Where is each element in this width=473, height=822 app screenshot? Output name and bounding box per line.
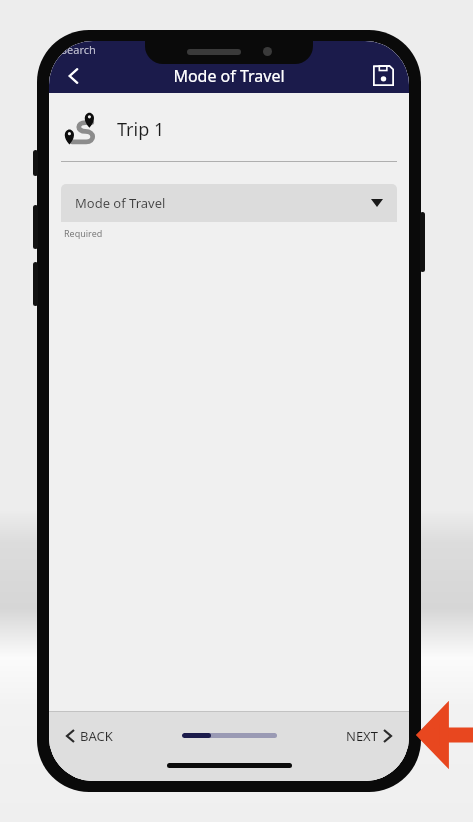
staticText: Mode of Travel <box>75 194 166 212</box>
staticText: Mode of Travel <box>173 65 285 87</box>
button[interactable]: BACK <box>61 721 119 751</box>
staticText: Search <box>61 42 96 57</box>
staticText: NEXT <box>346 727 378 745</box>
staticText: BACK <box>80 727 113 745</box>
button[interactable]: Mode of Travel <box>61 184 397 222</box>
button[interactable]: Back <box>55 58 93 93</box>
button[interactable]: NEXT <box>340 721 397 751</box>
button[interactable]: Save <box>365 58 401 93</box>
staticText: Required <box>64 227 103 239</box>
staticText: Trip 1 <box>117 117 165 142</box>
